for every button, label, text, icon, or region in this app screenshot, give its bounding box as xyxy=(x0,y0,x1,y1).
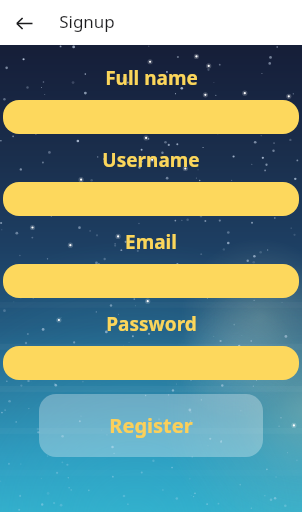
button[interactable] xyxy=(3,264,299,298)
staticText: Full name xyxy=(105,65,198,91)
staticText: Register xyxy=(109,412,193,439)
button[interactable]: Register xyxy=(39,394,263,457)
button[interactable] xyxy=(3,100,299,134)
button[interactable] xyxy=(3,182,299,216)
staticText: Password xyxy=(106,311,197,337)
button[interactable] xyxy=(3,346,299,380)
staticText: Username xyxy=(102,147,200,173)
staticText: Signup xyxy=(59,10,115,33)
staticText: Email xyxy=(125,229,177,255)
button[interactable]: Back xyxy=(8,7,40,39)
